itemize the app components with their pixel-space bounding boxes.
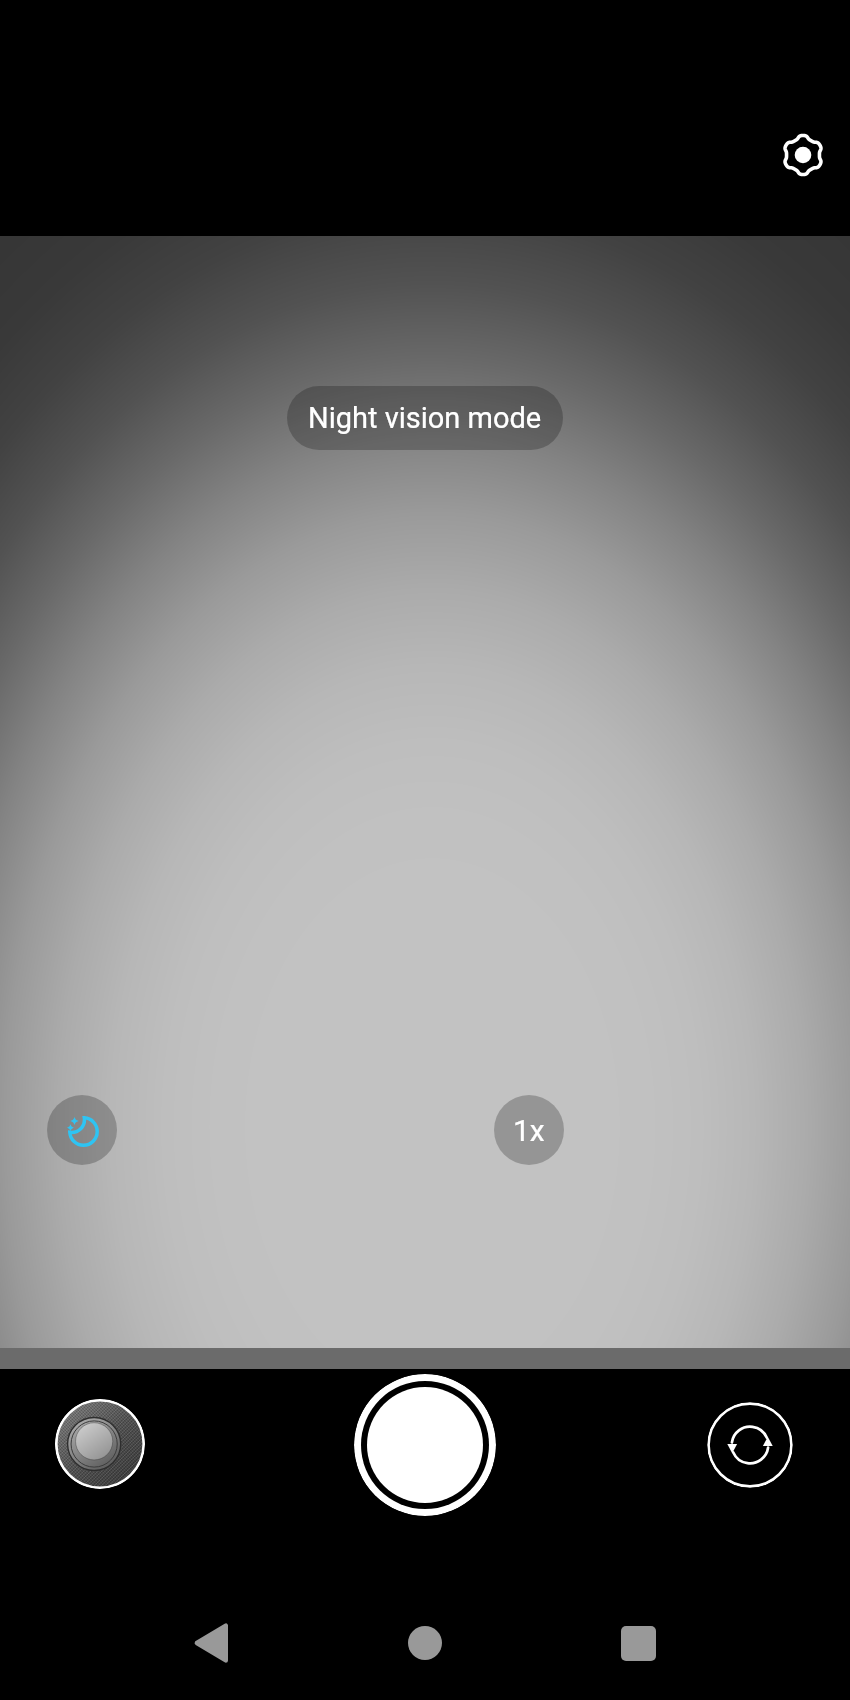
button[interactable]: Recent apps: [603, 1608, 673, 1678]
button[interactable]: 1x: [494, 1095, 564, 1165]
button[interactable]: Switch camera: [707, 1402, 793, 1488]
button[interactable]: Gallery: [55, 1399, 145, 1489]
button[interactable]: Take photo: [354, 1374, 496, 1516]
staticText: 1x: [513, 1113, 545, 1148]
button[interactable]: Night vision mode: [287, 386, 563, 450]
button[interactable]: Home: [390, 1608, 460, 1678]
button[interactable]: Settings: [765, 117, 841, 193]
button[interactable]: Back: [175, 1608, 245, 1678]
staticText: Night vision mode: [308, 401, 542, 435]
button[interactable]: Night mode: [47, 1095, 117, 1165]
